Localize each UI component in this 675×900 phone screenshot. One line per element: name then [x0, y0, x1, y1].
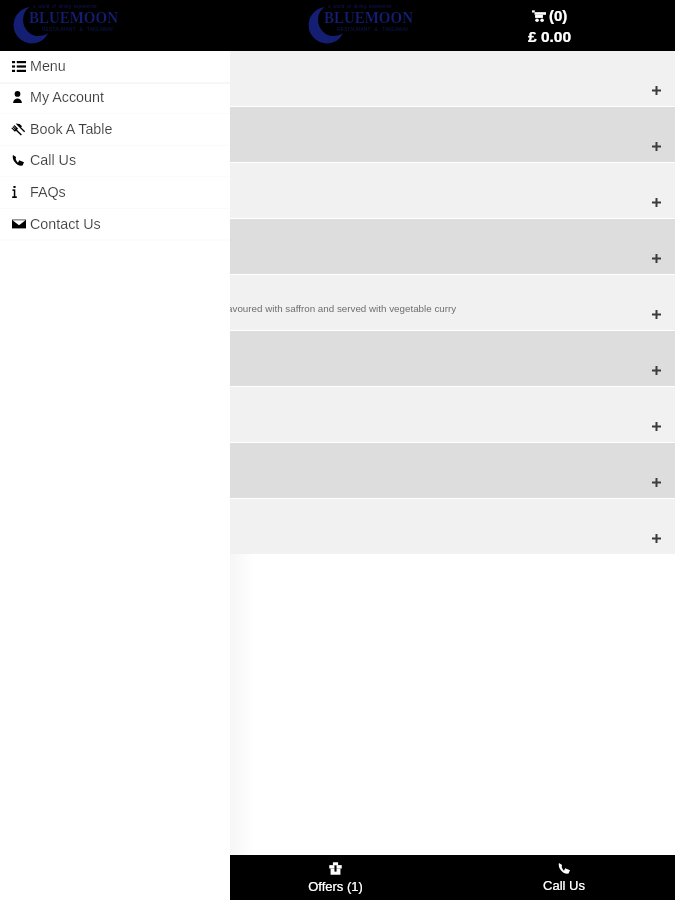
button[interactable]: Garlic Naan [0, 443, 675, 499]
button[interactable]: FAQs [0, 176, 230, 208]
button[interactable]: Menu [0, 50, 230, 82]
staticText: Lamb Rogan Josh [12, 114, 125, 129]
staticText: Basmati rice cooked with chicken & mild … [12, 303, 457, 314]
staticText: FAQs [30, 184, 66, 200]
button[interactable]: Lamb Biryani [0, 331, 675, 387]
staticText: Book A Table [30, 121, 113, 137]
button[interactable]: Pilau Rice [0, 499, 675, 555]
button[interactable]: Prawn Bhuna [0, 219, 675, 275]
button[interactable]: Vegetable Curry [0, 387, 675, 443]
staticText: Offers (1) [308, 879, 363, 894]
button[interactable]: Lamb Rogan Josh [0, 107, 675, 163]
button[interactable]: Chicken Korma [0, 163, 675, 219]
button[interactable]: Add item [645, 191, 667, 213]
staticText: Call Us [543, 878, 585, 893]
staticText: BLUEMOON [324, 7, 414, 26]
button[interactable]: Add item [645, 527, 667, 549]
button[interactable]: Contact Us [0, 208, 230, 240]
button[interactable]: Shopping cart [505, 7, 595, 45]
button[interactable]: Call Us [0, 144, 230, 176]
staticText: My Account [30, 89, 104, 105]
staticText: Chicken Tikka Masala [12, 58, 147, 73]
staticText: Call Us [30, 152, 77, 168]
staticText: Prawn Bhuna [12, 226, 96, 241]
staticText: a world of dining experience [33, 4, 97, 9]
staticText: Menu [30, 58, 66, 74]
staticText: (0) [549, 7, 568, 24]
button[interactable]: Add item [645, 415, 667, 437]
button[interactable]: Chicken Biryani [0, 275, 675, 331]
button[interactable]: My Account [0, 81, 230, 113]
staticText: BLUEMOON [29, 7, 119, 26]
button[interactable]: Add item [645, 471, 667, 493]
button[interactable]: Call Us [509, 855, 619, 900]
staticText: Contact Us [30, 216, 101, 232]
button[interactable]: Add item [645, 247, 667, 269]
button[interactable]: Book A Table [0, 113, 230, 145]
staticText: a world of dining experience [328, 4, 392, 9]
button[interactable]: Add item [645, 135, 667, 157]
button[interactable]: Chicken Tikka Masala [0, 51, 675, 107]
staticText: RESTAURANT & TAKEAWAY [42, 26, 114, 32]
button[interactable]: Add item [645, 303, 667, 325]
button[interactable]: Add item [645, 359, 667, 381]
button[interactable]: Add item [645, 79, 667, 101]
button[interactable]: Offers (1) [280, 855, 390, 900]
staticText: £ 0.00 [528, 28, 572, 45]
staticText: RESTAURANT & TAKEAWAY [337, 26, 409, 32]
